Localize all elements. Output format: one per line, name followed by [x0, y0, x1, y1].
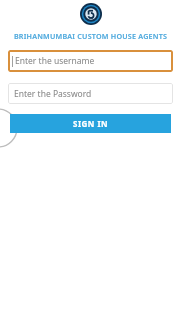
button[interactable]: SIGN IN: [10, 114, 171, 133]
button[interactable]: Enter the Password: [8, 83, 173, 104]
staticText: SIGN IN: [73, 118, 109, 129]
staticText: BRIHANMUMBAI CUSTOM HOUSE AGENTS ASSOCIA…: [3, 31, 178, 41]
staticText: Enter the Password: [14, 88, 92, 100]
staticText: Enter the username: [15, 55, 95, 67]
button[interactable]: Enter the username: [8, 50, 173, 72]
